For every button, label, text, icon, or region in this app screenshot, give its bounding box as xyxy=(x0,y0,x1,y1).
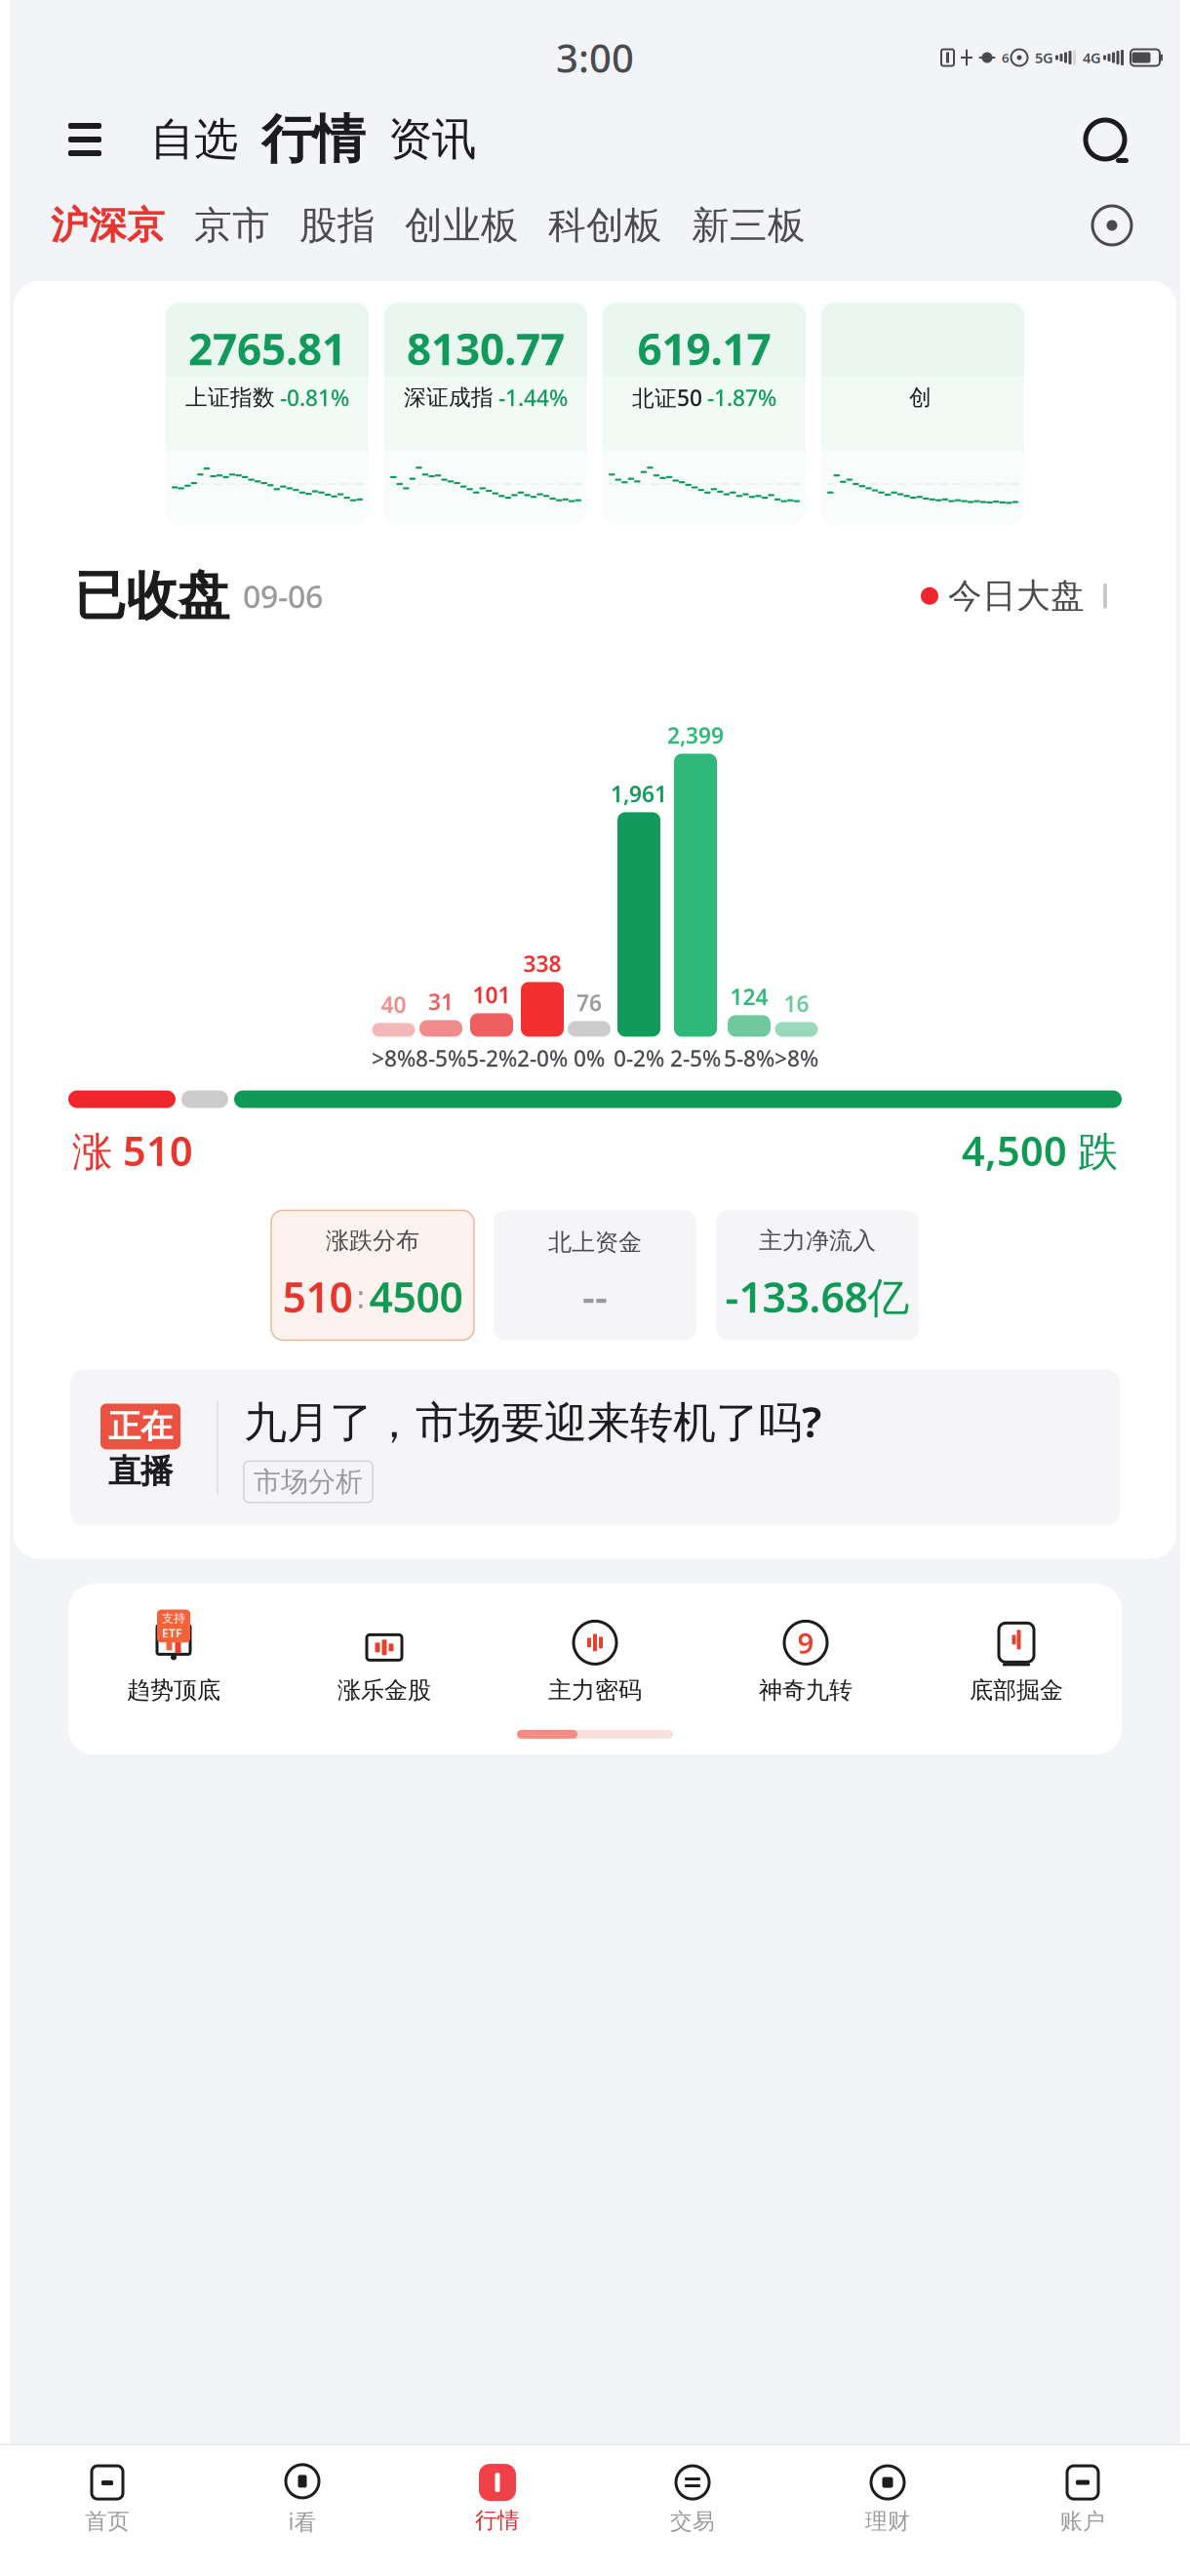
staticText: 主力净流入 xyxy=(759,1226,876,1255)
button[interactable]: 沪深京 xyxy=(51,202,165,249)
staticText: 账户 xyxy=(1060,2508,1105,2535)
staticText: 创 xyxy=(909,384,932,411)
staticText: -133.68亿 xyxy=(725,1269,910,1324)
button[interactable]: 619.17 xyxy=(603,302,806,525)
staticText: 8-5% xyxy=(416,1043,466,1073)
button[interactable]: 首页 xyxy=(10,2445,205,2553)
staticText: 首页 xyxy=(85,2508,130,2535)
button[interactable]: 主力净流入 xyxy=(716,1210,919,1340)
staticText: 正在 xyxy=(108,1407,173,1446)
button[interactable]: 主力密码 xyxy=(490,1617,700,1705)
staticText: 6 xyxy=(1002,49,1010,66)
staticText: 今日大盘 xyxy=(948,575,1085,617)
staticText: 40 xyxy=(381,990,406,1019)
button[interactable]: 北上资金 xyxy=(494,1210,696,1340)
staticText: 124 xyxy=(730,982,768,1011)
staticText: 已收盘 xyxy=(74,564,229,628)
staticText: 2765.81 xyxy=(188,320,346,377)
staticText: 理财 xyxy=(865,2508,910,2535)
button[interactable]: i看 xyxy=(205,2445,400,2553)
button[interactable]: 2765.81 xyxy=(166,302,369,525)
button[interactable]: 底部掘金 xyxy=(911,1617,1122,1705)
staticText: 5-2% xyxy=(466,1043,517,1073)
staticText: 资讯 xyxy=(388,112,476,167)
staticText: 338 xyxy=(523,949,561,978)
staticText: 主力密码 xyxy=(548,1676,642,1705)
staticText: 北上资金 xyxy=(548,1228,642,1257)
staticText: 支持ETF xyxy=(162,1611,185,1641)
button[interactable]: 交易 xyxy=(595,2445,790,2553)
button[interactable]: 行情 xyxy=(400,2445,595,2553)
staticText: 京市 xyxy=(194,202,270,249)
staticText: 09-06 xyxy=(243,575,323,617)
button[interactable]: 今日大盘 xyxy=(921,575,1116,617)
button[interactable]: 新三板 xyxy=(692,202,806,249)
button[interactable]: 京市 xyxy=(194,202,270,249)
button[interactable]: Customize list xyxy=(1085,198,1139,253)
button[interactable]: 账户 xyxy=(985,2445,1180,2553)
staticText: 股指 xyxy=(299,202,376,249)
staticText: 创业板 xyxy=(405,202,519,249)
button[interactable]: Search xyxy=(1071,105,1139,174)
staticText: 3:00 xyxy=(556,32,634,83)
staticText: 2-5% xyxy=(670,1043,721,1073)
button[interactable]: 科创板 xyxy=(548,202,662,249)
button[interactable]: 创业板 xyxy=(405,202,519,249)
staticText: 涨 510 xyxy=(72,1124,193,1177)
staticText: 4500 xyxy=(369,1269,463,1324)
staticText: 5-8% xyxy=(724,1043,774,1073)
staticText: 新三板 xyxy=(692,202,806,249)
staticText: 101 xyxy=(473,980,511,1009)
button[interactable]: 理财 xyxy=(790,2445,985,2553)
staticText: 510 xyxy=(282,1269,353,1324)
staticText: 科创板 xyxy=(548,202,662,249)
staticText: 2,399 xyxy=(667,720,724,750)
button[interactable]: 股指 xyxy=(299,202,376,249)
button[interactable]: 涨跌分布 xyxy=(271,1210,474,1340)
staticText: >8% xyxy=(372,1043,416,1073)
staticText: 北证50 xyxy=(632,383,702,412)
button[interactable] xyxy=(821,302,1024,525)
staticText: 神奇九转 xyxy=(759,1676,853,1705)
staticText: 2-0% xyxy=(517,1043,568,1073)
staticText: 市场分析 xyxy=(254,1465,363,1499)
button[interactable]: 正在 xyxy=(70,1369,1120,1525)
staticText: 8130.77 xyxy=(407,320,565,377)
staticText: -1.87% xyxy=(707,383,776,412)
button[interactable]: 8130.77 xyxy=(384,302,587,525)
staticText: 行情 xyxy=(475,2507,520,2534)
button[interactable]: 涨乐金股 xyxy=(279,1617,490,1705)
staticText: -- xyxy=(582,1271,608,1322)
staticText: -0.81% xyxy=(280,383,349,412)
staticText: 底部掘金 xyxy=(970,1676,1063,1705)
button[interactable]: 自选 xyxy=(150,105,238,174)
staticText: 行情 xyxy=(261,108,365,171)
staticText: 涨乐金股 xyxy=(337,1676,431,1705)
staticText: 1,961 xyxy=(611,779,667,808)
button[interactable]: 行情 xyxy=(261,105,365,174)
button[interactable]: 支持ETF xyxy=(68,1617,279,1705)
staticText: -1.44% xyxy=(498,383,568,412)
button[interactable]: 9 xyxy=(700,1617,911,1705)
staticText: 九月了，市场要迎来转机了吗? xyxy=(244,1392,821,1449)
staticText: 31 xyxy=(428,987,454,1016)
staticText: 0% xyxy=(574,1043,605,1073)
staticText: 76 xyxy=(576,988,602,1017)
staticText: 涨跌分布 xyxy=(326,1226,419,1255)
staticText: 深证成指 xyxy=(404,384,494,411)
staticText: i看 xyxy=(288,2507,317,2536)
staticText: 4G xyxy=(1083,48,1101,67)
button[interactable]: Menu xyxy=(51,105,119,174)
staticText: 趋势顶底 xyxy=(127,1676,220,1705)
staticText: 交易 xyxy=(670,2508,715,2535)
staticText: 沪深京 xyxy=(51,202,165,249)
staticText: : xyxy=(357,1276,365,1317)
staticText: 直播 xyxy=(108,1451,173,1491)
staticText: 4,500 跌 xyxy=(962,1124,1118,1177)
staticText: 619.17 xyxy=(637,320,771,377)
staticText: 自选 xyxy=(150,112,238,167)
staticText: 9 xyxy=(797,1624,814,1662)
staticText: 0-2% xyxy=(614,1043,664,1073)
button[interactable]: 资讯 xyxy=(388,105,476,174)
staticText: 16 xyxy=(784,989,809,1018)
